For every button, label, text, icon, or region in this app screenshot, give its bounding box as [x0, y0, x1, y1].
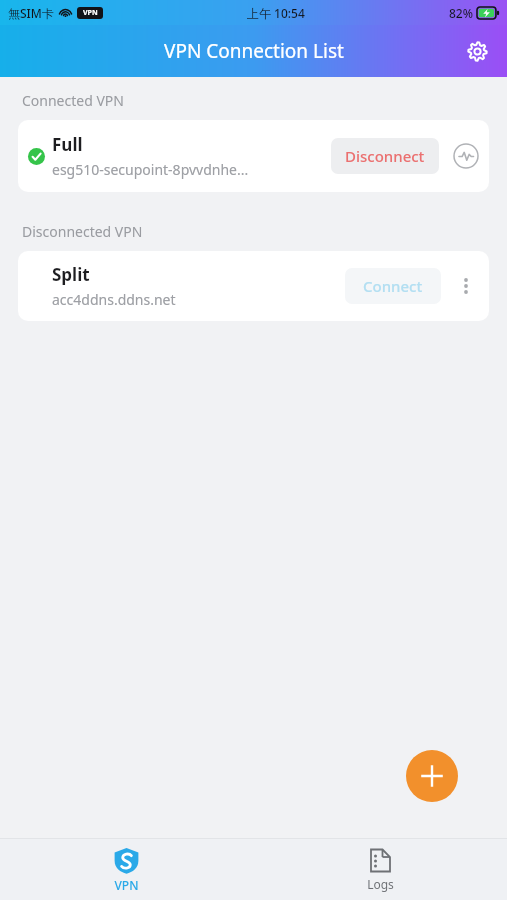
staticText: VPN: [83, 8, 98, 18]
staticText: esg510-secupoint-8pvvdnhe...: [52, 160, 249, 179]
staticText: VPN Connection List: [164, 38, 344, 64]
button[interactable]: VPN: [0, 839, 253, 900]
button[interactable]: Disconnect: [331, 138, 439, 174]
button[interactable]: Full: [18, 120, 489, 192]
button[interactable]: Traffic statistics: [449, 139, 483, 173]
staticText: Logs: [367, 876, 394, 892]
button[interactable]: Settings: [457, 31, 497, 71]
staticText: Connected VPN: [22, 91, 124, 110]
button[interactable]: Logs: [253, 839, 507, 900]
staticText: Full: [52, 133, 83, 156]
staticText: Disconnected VPN: [22, 222, 143, 241]
staticText: 無SIM卡: [8, 5, 54, 21]
staticText: acc4ddns.ddns.net: [52, 290, 176, 309]
button[interactable]: Split: [18, 251, 489, 321]
staticText: Connect: [363, 276, 423, 296]
button[interactable]: More options: [449, 269, 483, 303]
staticText: 82%: [449, 5, 473, 21]
staticText: Disconnect: [345, 146, 425, 166]
staticText: 上午 10:54: [247, 5, 305, 21]
staticText: VPN: [114, 877, 139, 893]
button[interactable]: Connect: [345, 268, 441, 304]
button[interactable]: Add VPN connection: [406, 750, 458, 802]
staticText: Split: [52, 263, 90, 286]
